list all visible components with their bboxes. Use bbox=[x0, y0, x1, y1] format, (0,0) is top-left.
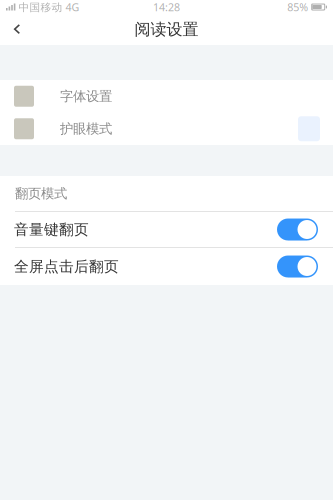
staticText: 音量键翻页 bbox=[14, 220, 89, 238]
staticText: 中国移动 4G bbox=[18, 0, 79, 14]
staticText: 85% bbox=[287, 0, 308, 14]
button[interactable]: 全屏点击后翻页 bbox=[0, 248, 333, 285]
staticText: 护眼模式 bbox=[60, 121, 112, 137]
button[interactable]: 字体设置 bbox=[0, 80, 333, 112]
button[interactable]: 护眼模式 bbox=[0, 112, 333, 145]
button[interactable]: 音量键翻页 bbox=[0, 212, 333, 247]
staticText: 翻页模式 bbox=[15, 185, 67, 202]
staticText: 全屏点击后翻页 bbox=[14, 257, 119, 275]
staticText: 14:28 bbox=[153, 0, 180, 14]
button[interactable]: 翻页模式 bbox=[0, 176, 333, 211]
button[interactable]: Back bbox=[0, 14, 34, 45]
staticText: 阅读设置 bbox=[134, 20, 198, 39]
staticText: 字体设置 bbox=[60, 88, 112, 104]
